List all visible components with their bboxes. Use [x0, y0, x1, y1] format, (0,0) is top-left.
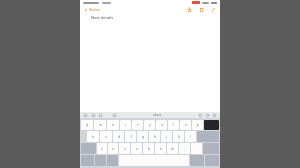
staticText: x	[112, 147, 114, 151]
button[interactable]: o	[180, 120, 191, 130]
staticText: l	[190, 135, 191, 139]
button[interactable]: e	[107, 120, 119, 130]
button[interactable]: q	[81, 120, 93, 130]
button[interactable]: k	[173, 131, 184, 142]
button[interactable]: c	[119, 143, 130, 154]
staticText: s	[105, 135, 107, 139]
staticText: z	[101, 147, 103, 151]
button[interactable]: p	[192, 120, 203, 130]
button[interactable]: Share	[186, 6, 193, 13]
staticText: o	[185, 123, 187, 127]
button[interactable]: y	[144, 120, 155, 130]
staticText: ,	[184, 147, 185, 151]
staticText: w	[99, 123, 102, 127]
staticText: f	[130, 135, 132, 139]
staticText: Notes	[89, 7, 101, 12]
staticText: y	[149, 123, 151, 127]
button[interactable]: above	[153, 113, 162, 117]
staticText: c	[124, 147, 126, 151]
staticText: v	[136, 147, 138, 151]
button[interactable]: Undo	[83, 113, 88, 118]
button[interactable]: Compose	[210, 6, 217, 13]
staticText: m	[171, 147, 174, 151]
staticText: i	[173, 123, 174, 127]
button[interactable]: Insert photo	[112, 113, 117, 118]
button[interactable]: a	[87, 131, 99, 142]
button[interactable]: w	[94, 120, 106, 130]
staticText: r	[125, 123, 127, 127]
button[interactable]: x	[108, 143, 118, 154]
button[interactable]: f	[125, 131, 136, 142]
staticText: b	[148, 147, 150, 151]
button[interactable]: s	[100, 131, 112, 142]
staticText: u	[161, 123, 163, 127]
staticText: d	[118, 135, 120, 139]
button[interactable]: u	[156, 120, 167, 130]
button[interactable]: Hide keyboard	[212, 113, 217, 118]
button[interactable]: n	[155, 143, 166, 154]
staticText: k	[178, 135, 180, 139]
button[interactable]: m	[167, 143, 178, 154]
button[interactable]: Delete	[198, 6, 205, 13]
button[interactable]: ,	[179, 143, 190, 154]
button[interactable]: g	[137, 131, 148, 142]
button[interactable]: Notes	[83, 6, 102, 13]
button[interactable]: d	[113, 131, 124, 142]
button[interactable]: j	[161, 131, 172, 142]
button[interactable]: b	[143, 143, 154, 154]
staticText: n	[160, 147, 162, 151]
staticText: g	[142, 135, 144, 139]
button[interactable]: Text format	[98, 113, 103, 118]
staticText: j	[166, 135, 167, 139]
staticText: h	[154, 135, 156, 139]
button[interactable]: i	[168, 120, 179, 130]
button[interactable]: z	[97, 143, 107, 154]
button[interactable]: v	[131, 143, 142, 154]
staticText: p	[197, 123, 199, 127]
button[interactable]: Checklist	[91, 113, 96, 118]
staticText: New details	[91, 15, 114, 20]
staticText: e	[112, 123, 114, 127]
button[interactable]: t	[132, 120, 143, 130]
button[interactable]: h	[149, 131, 160, 142]
button[interactable]: l	[185, 131, 196, 142]
staticText: t	[137, 123, 139, 127]
staticText: a	[92, 135, 94, 139]
staticText: .	[196, 147, 197, 151]
button[interactable]: Bold	[198, 113, 203, 118]
button[interactable]: Backspace	[204, 120, 219, 130]
staticText: q	[86, 123, 88, 127]
button[interactable]: r	[120, 120, 131, 130]
button[interactable]: Italic	[205, 113, 210, 118]
